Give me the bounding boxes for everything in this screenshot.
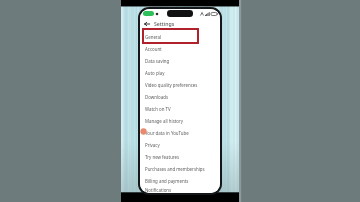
staticText: Your data in YouTube: [145, 130, 189, 136]
button[interactable]: Watch on TV: [140, 103, 220, 115]
button[interactable]: Video quality preferences: [140, 79, 220, 91]
button[interactable]: Try new features: [140, 151, 220, 163]
staticText: Account: [145, 46, 162, 52]
staticText: Purchases and memberships: [145, 166, 205, 172]
button[interactable]: Your data in YouTube: [140, 127, 220, 139]
button[interactable]: Billing and payments: [140, 175, 220, 187]
staticText: Watch on TV: [145, 106, 171, 112]
staticText: Try new features: [145, 154, 180, 160]
staticText: Notifications: [145, 187, 172, 193]
staticText: Downloads: [145, 94, 168, 100]
button[interactable]: Privacy: [140, 139, 220, 151]
button[interactable]: Auto play: [140, 67, 220, 79]
staticText: Manage all history: [145, 118, 184, 124]
staticText: General: [145, 34, 162, 40]
staticText: Settings: [154, 20, 175, 27]
staticText: Data saving: [145, 58, 170, 64]
button[interactable]: Downloads: [140, 91, 220, 103]
button[interactable]: Notifications: [140, 187, 220, 193]
button[interactable]: Data saving: [140, 55, 220, 67]
button[interactable]: Account: [140, 43, 220, 55]
staticText: Privacy: [145, 142, 160, 148]
staticText: Auto play: [145, 70, 165, 76]
staticText: Video quality preferences: [145, 82, 198, 88]
button[interactable]: Manage all history: [140, 115, 220, 127]
button[interactable]: Back: [143, 20, 151, 28]
staticText: Billing and payments: [145, 178, 189, 184]
button[interactable]: General: [140, 31, 220, 43]
button[interactable]: Purchases and memberships: [140, 163, 220, 175]
